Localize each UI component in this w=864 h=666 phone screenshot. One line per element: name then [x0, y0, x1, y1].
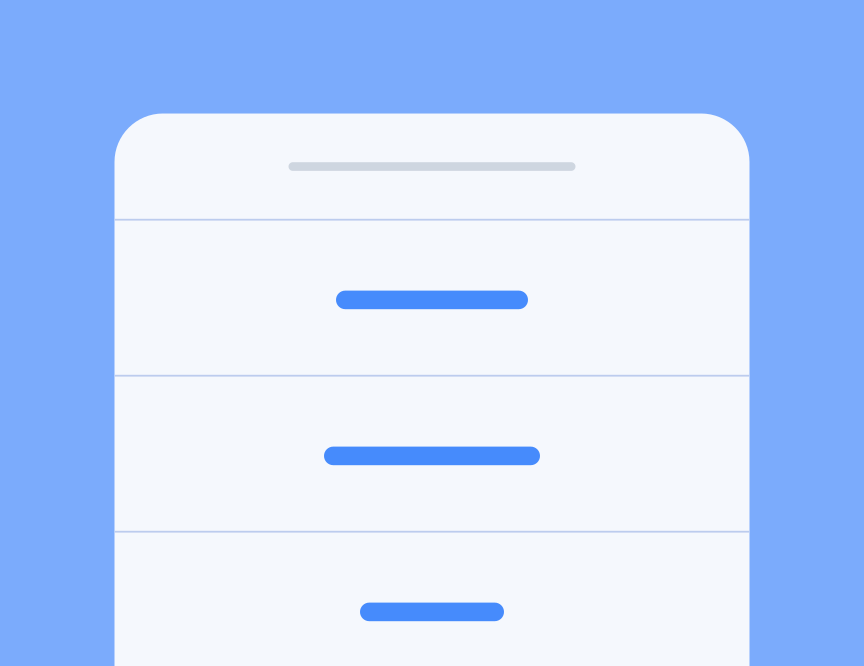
button[interactable]: Option: [114, 533, 749, 666]
button[interactable]: Option: [114, 377, 749, 531]
button[interactable]: Option: [114, 221, 749, 375]
